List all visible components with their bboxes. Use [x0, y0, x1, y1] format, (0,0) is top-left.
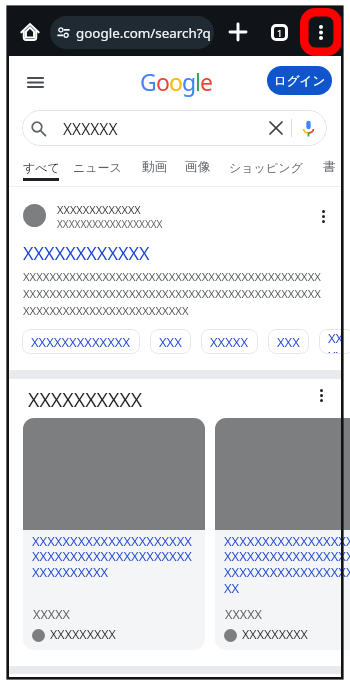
button[interactable]: すべて — [23, 160, 60, 175]
staticText: XXXXX — [33, 606, 70, 623]
staticText: XXXXXXXXXXXXX — [57, 202, 141, 217]
button[interactable]: ログイン — [267, 66, 332, 95]
button[interactable]: XXXXXXXXXXXXXXXXXXXXXXXXXXXXXXXXXXXXXXXX… — [23, 418, 205, 650]
staticText: google.com/search?q — [76, 24, 211, 42]
staticText: ログイン — [274, 73, 326, 89]
button[interactable]: More options — [312, 202, 334, 230]
button[interactable]: XXXXXXXXXXXX — [23, 241, 150, 266]
button[interactable]: XXXXXXXXXXXXX — [22, 329, 140, 354]
staticText: XXX — [277, 333, 300, 351]
staticText: XXXXXXXXXXXXXXXXXX — [57, 217, 163, 231]
button[interactable]: XXXXX — [201, 329, 258, 354]
staticText: XXXXXXXXX — [242, 626, 308, 643]
staticText: 1 — [277, 27, 283, 39]
button[interactable]: More options — [300, 8, 342, 56]
button[interactable]: XXXX — [319, 329, 350, 354]
staticText: XXXXXXXXXXXXXXXXXXXXXXXXXXXXXXXXXXXXXXXX… — [32, 532, 192, 581]
staticText: o — [169, 66, 182, 97]
button[interactable]: 動画 — [142, 159, 168, 175]
staticText: XXX — [159, 333, 182, 351]
button[interactable]: 画像 — [185, 159, 211, 175]
button[interactable]: 書 — [323, 159, 336, 175]
staticText: XXXXXXXXXX — [28, 386, 143, 413]
button[interactable]: More options — [310, 382, 332, 408]
button[interactable]: Home — [15, 17, 45, 47]
staticText: XXXXXXXXX — [50, 626, 116, 643]
staticText: o — [156, 66, 169, 97]
staticText: g — [182, 66, 195, 97]
staticText: XXXXXX — [63, 118, 118, 139]
staticText: XXXXX — [210, 333, 249, 351]
staticText: XXXXXXXXXXXXXXXXXXXXXXXXXXXXXXXXXXXXXXXX… — [23, 269, 323, 318]
staticText: l — [195, 66, 200, 97]
staticText: G — [140, 66, 156, 97]
staticText: e — [200, 66, 212, 97]
button[interactable]: ショッピング — [229, 160, 303, 175]
button[interactable]: ニュース — [73, 160, 122, 175]
button[interactable]: Tabs — [264, 17, 294, 47]
button[interactable]: XXXXXXXXXXXXXXXXXXXXXXXXXXXXXXXXXXXXXXXX… — [215, 418, 350, 650]
button[interactable]: Menu — [20, 67, 50, 97]
button[interactable]: XXX — [268, 329, 309, 354]
staticText: XXXXXXXXXXXXX — [31, 333, 131, 351]
button[interactable]: New tab — [223, 17, 253, 47]
staticText: XXXXX — [225, 606, 262, 623]
button[interactable]: XXXXXX — [22, 110, 327, 146]
button[interactable]: XXX — [150, 329, 191, 354]
staticText: XXXX — [328, 329, 345, 354]
staticText: XXXXXXXXXXXXXXXXXXXXXXXXXXXXXXXXXXXXXXXX… — [224, 532, 350, 597]
button[interactable]: google.com/search?q — [50, 16, 214, 49]
